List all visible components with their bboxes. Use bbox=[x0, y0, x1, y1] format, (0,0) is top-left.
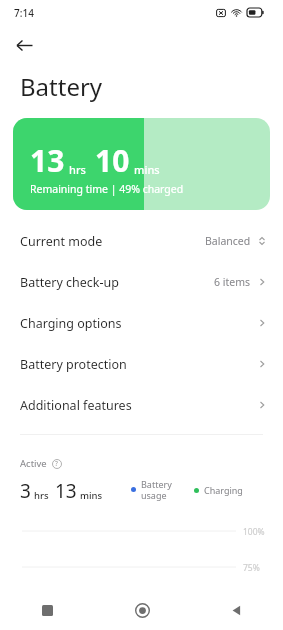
staticText: 7:14 bbox=[14, 6, 34, 20]
button[interactable]: Recents bbox=[0, 590, 95, 630]
staticText: 3 bbox=[20, 478, 31, 504]
staticText: 13 bbox=[55, 478, 77, 504]
staticText: mins bbox=[80, 489, 103, 502]
staticText: 75% bbox=[243, 562, 260, 574]
button[interactable]: Back bbox=[10, 31, 38, 59]
staticText: Current mode bbox=[20, 233, 103, 250]
button[interactable]: Help bbox=[51, 458, 62, 469]
button[interactable]: 13 bbox=[13, 118, 270, 210]
staticText: 6 items bbox=[214, 275, 251, 289]
button[interactable]: Additional features bbox=[0, 392, 283, 418]
staticText: ? bbox=[55, 459, 58, 468]
button[interactable]: Current mode bbox=[0, 228, 283, 254]
staticText: Charging options bbox=[20, 315, 122, 332]
staticText: Charging bbox=[204, 484, 243, 496]
button[interactable]: Charging options bbox=[0, 310, 283, 336]
button[interactable]: Battery protection bbox=[0, 351, 283, 377]
staticText: Battery usage bbox=[141, 478, 172, 501]
staticText: hrs bbox=[69, 162, 86, 177]
staticText: mins bbox=[134, 162, 160, 177]
staticText: Remaining time | 49% charged bbox=[30, 182, 184, 196]
button[interactable]: Home bbox=[95, 590, 189, 630]
staticText: Active bbox=[20, 457, 47, 470]
staticText: hrs bbox=[34, 489, 49, 502]
staticText: Battery check-up bbox=[20, 274, 119, 291]
staticText: Additional features bbox=[20, 397, 132, 414]
staticText: Battery bbox=[20, 70, 103, 103]
button[interactable]: Battery check-up bbox=[0, 269, 283, 295]
staticText: Battery protection bbox=[20, 356, 127, 373]
staticText: 100% bbox=[243, 526, 265, 538]
staticText: 10 bbox=[95, 140, 130, 181]
staticText: Balanced bbox=[205, 234, 251, 248]
staticText: 13 bbox=[30, 140, 65, 181]
button[interactable]: Back bbox=[189, 590, 283, 630]
